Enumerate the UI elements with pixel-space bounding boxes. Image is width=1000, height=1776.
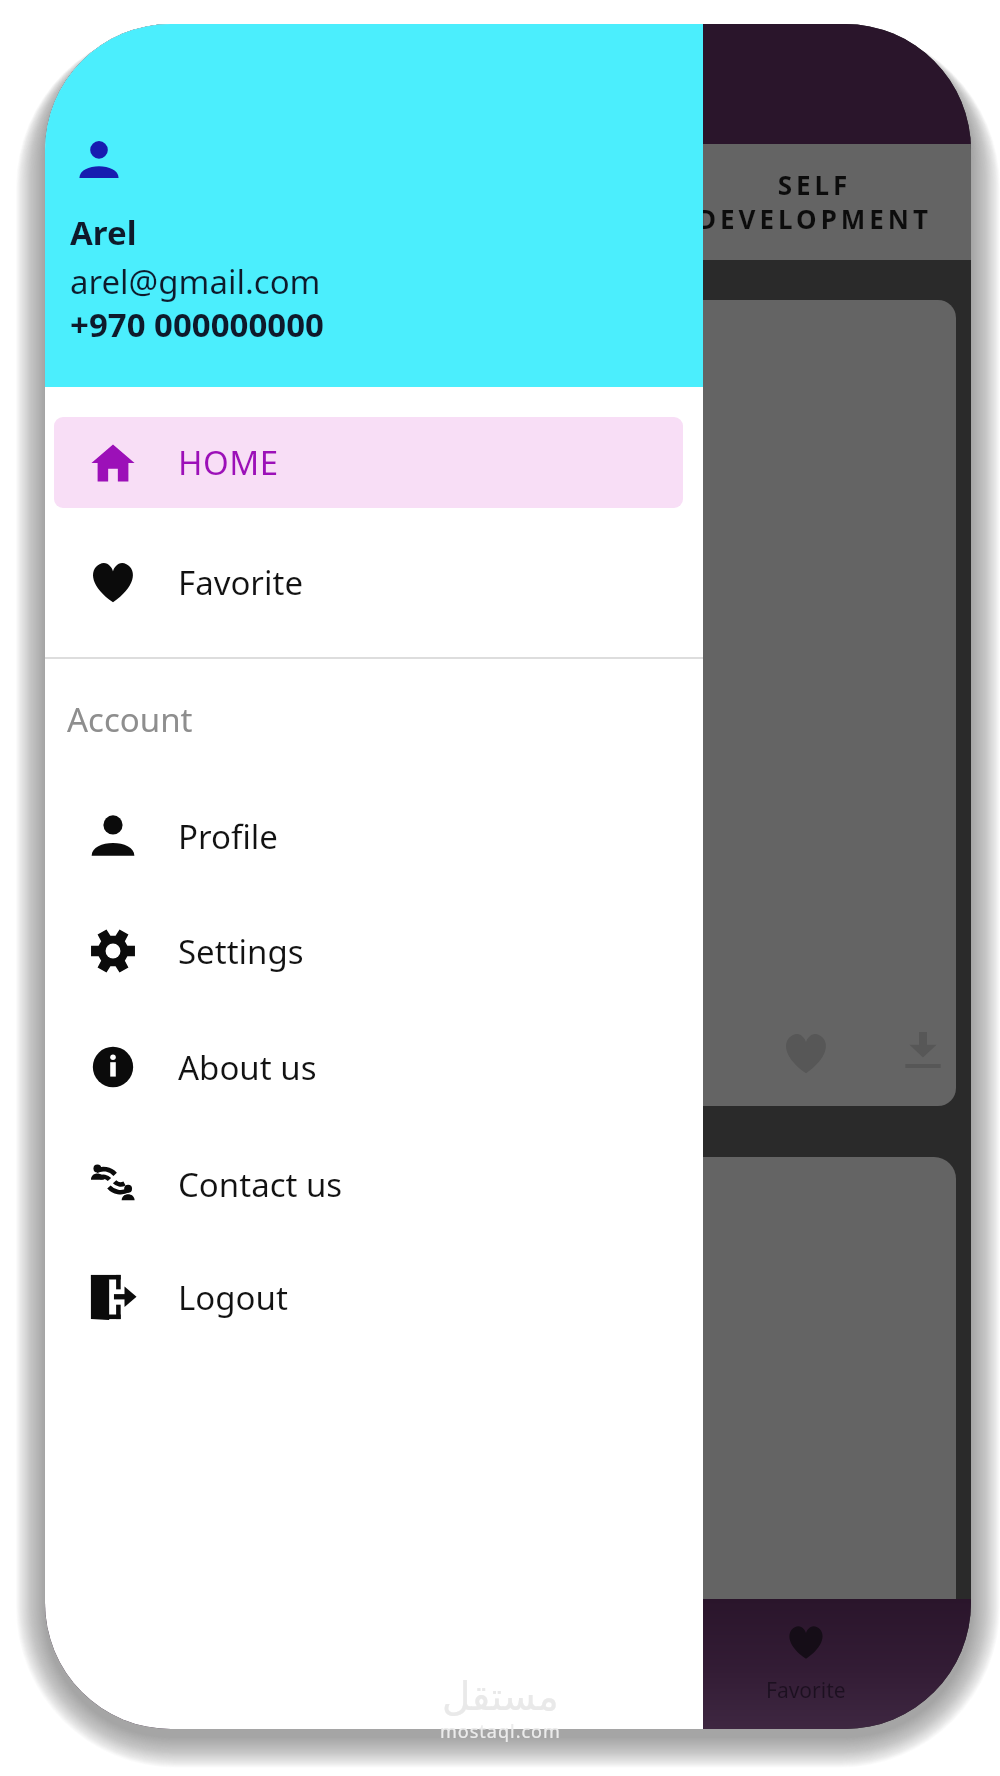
staticText: Profile (178, 814, 278, 859)
other: Account avatar (77, 138, 121, 182)
button[interactable]: Contact us (45, 1132, 703, 1236)
button[interactable]: HOME (54, 417, 683, 508)
button[interactable]: Account avatar (45, 24, 703, 387)
staticText: mostaql.com (440, 1719, 561, 1744)
other: Download (903, 1032, 943, 1072)
other: Favourite (782, 1029, 830, 1077)
staticText: Favorite (178, 560, 304, 605)
staticText: Contact us (178, 1162, 343, 1207)
staticText: Logout (178, 1275, 288, 1320)
staticText: Settings (178, 929, 304, 974)
staticText: مستقل (442, 1674, 559, 1719)
button[interactable]: Settings (45, 899, 703, 1003)
staticText: Account (67, 697, 193, 742)
button[interactable]: Favorite (681, 1599, 931, 1705)
staticText: SELF DEVELOPMENT (697, 167, 932, 237)
staticText: HOME (178, 440, 279, 485)
button[interactable]: Logout (45, 1245, 703, 1349)
staticText: About us (178, 1045, 317, 1090)
staticText: arel@gmail.com (70, 259, 321, 304)
staticText: Arel (70, 210, 137, 255)
staticText: Favorite (766, 1676, 846, 1705)
button[interactable]: About us (45, 1015, 703, 1119)
staticText: +970 000000000 (70, 302, 324, 347)
button[interactable]: Favorite (45, 530, 703, 634)
button[interactable]: Profile (45, 784, 703, 888)
